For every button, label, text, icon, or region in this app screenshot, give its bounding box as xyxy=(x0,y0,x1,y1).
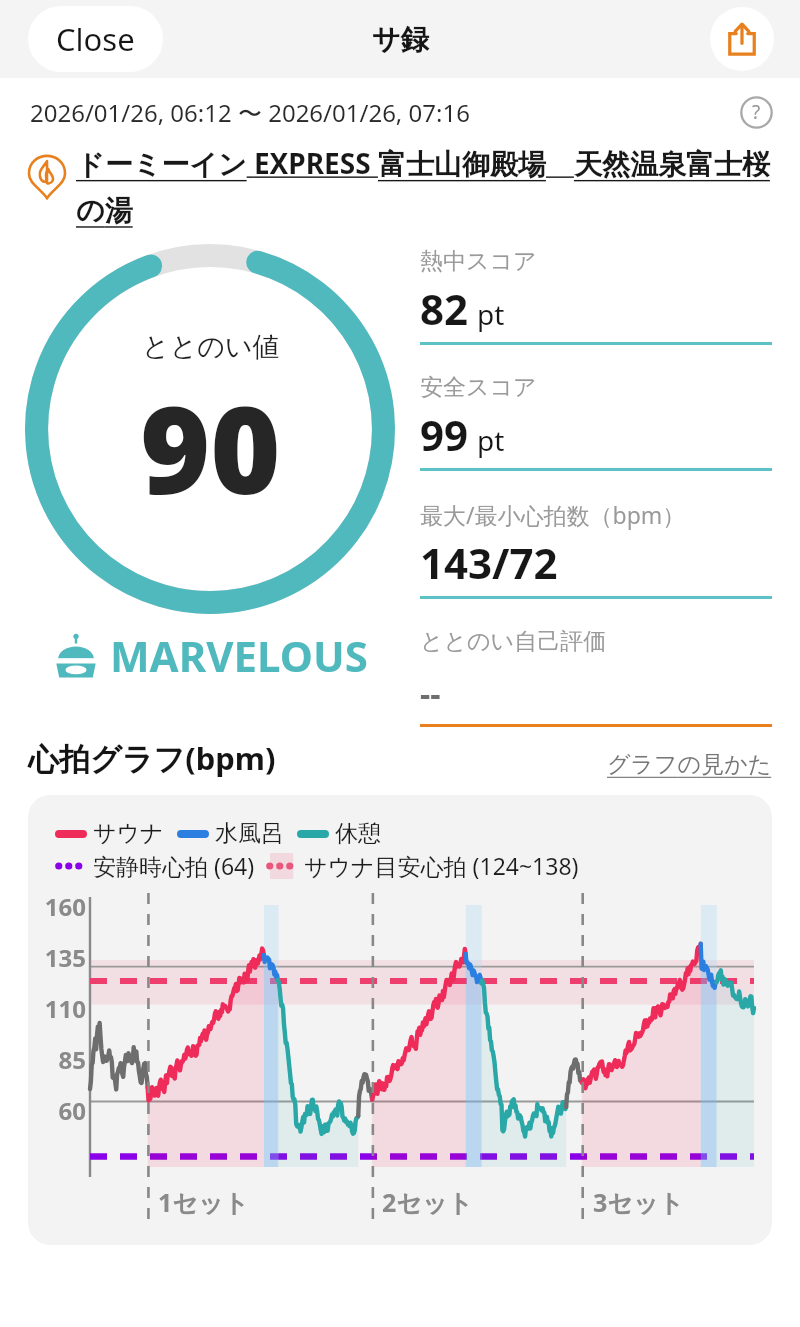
button[interactable]: Close xyxy=(28,6,163,72)
button[interactable]: 最大/最小心拍数（bpm） xyxy=(420,499,772,599)
staticText: 水風呂 xyxy=(215,819,284,848)
staticText: 安静時心拍 (64) xyxy=(93,850,255,881)
staticText: 2026/01/26, 06:12 〜 2026/01/26, 07:16 xyxy=(30,96,470,129)
staticText: -- xyxy=(420,672,441,716)
staticText: 99 xyxy=(420,406,469,463)
staticText: 160 xyxy=(34,890,86,923)
staticText: 休憩 xyxy=(335,819,381,848)
staticText: ととのい自己評価 xyxy=(420,627,607,656)
button[interactable]: 熱中スコア xyxy=(420,247,772,345)
staticText: 60 xyxy=(34,1094,86,1127)
button[interactable]: ドーミーイン EXPRESS 富士山御殿場 天然温泉富士桜の湯 xyxy=(76,144,774,229)
staticText: ととのい値 xyxy=(142,330,280,364)
staticText: Close xyxy=(56,18,135,60)
staticText: pt xyxy=(477,421,505,459)
staticText: 1セット xyxy=(158,1185,250,1219)
staticText: サウナ xyxy=(93,819,164,848)
staticText: 110 xyxy=(34,992,86,1025)
staticText: 熱中スコア xyxy=(420,247,537,276)
staticText: 143/72 xyxy=(420,534,558,591)
button[interactable]: 安全スコア xyxy=(420,373,772,471)
staticText: 3セット xyxy=(593,1185,685,1219)
staticText: 最大/最小心拍数（bpm） xyxy=(420,499,686,530)
staticText: pt xyxy=(477,295,505,333)
button[interactable]: グラフの見かた xyxy=(607,750,772,779)
button[interactable]: Help xyxy=(738,94,774,130)
staticText: 135 xyxy=(34,941,86,974)
staticText: 2セット xyxy=(382,1185,474,1219)
staticText: 85 xyxy=(34,1043,86,1076)
staticText: 安全スコア xyxy=(420,373,537,402)
staticText: MARVELOUS xyxy=(110,627,368,684)
staticText: ? xyxy=(752,99,761,125)
button[interactable]: Share xyxy=(710,7,774,71)
staticText: ドーミーイン EXPRESS 富士山御殿場 天然温泉富士桜の湯 xyxy=(76,144,774,229)
button[interactable]: ととのい自己評価 xyxy=(420,627,772,727)
staticText: 心拍グラフ(bpm) xyxy=(28,737,276,779)
staticText: サウナ目安心拍 (124~138) xyxy=(304,850,579,881)
staticText: グラフの見かた xyxy=(607,750,772,779)
staticText: 90 xyxy=(140,366,281,529)
staticText: サ録 xyxy=(372,22,429,57)
staticText: 82 xyxy=(420,280,469,337)
